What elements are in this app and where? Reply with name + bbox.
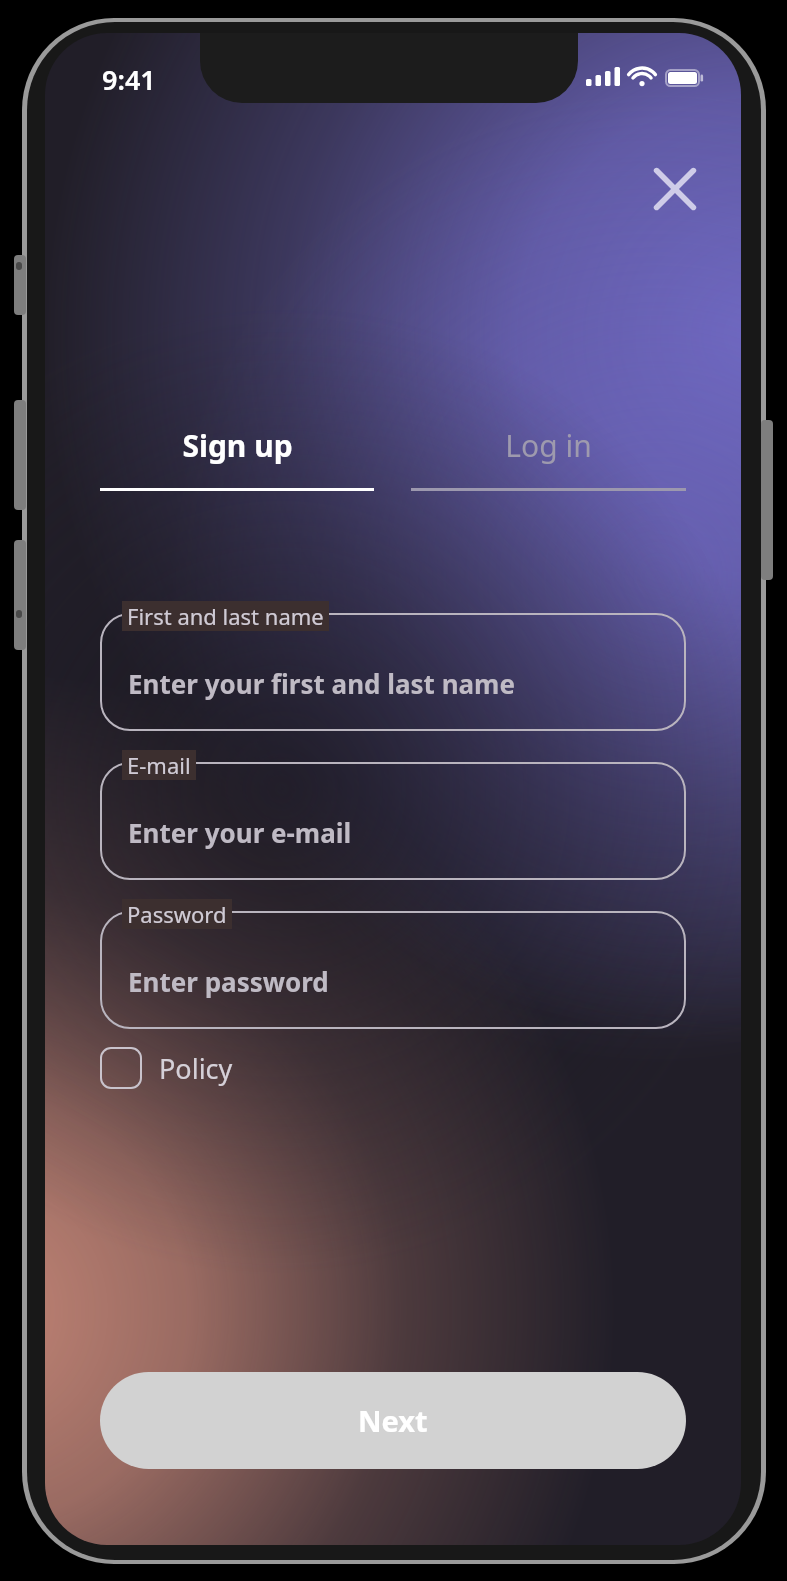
staticText: Policy (159, 1050, 233, 1087)
staticText: E-mail (127, 750, 191, 780)
button[interactable]: Next (100, 1372, 686, 1469)
button[interactable]: Log in (411, 425, 686, 491)
staticText: Log in (505, 425, 592, 466)
staticText: First and last name (127, 601, 324, 631)
staticText: Enter password (128, 964, 329, 999)
staticText: Enter your e-mail (128, 815, 352, 850)
button[interactable]: Close (631, 145, 719, 233)
staticText: 9:41 (102, 61, 156, 98)
staticText: Sign up (182, 425, 293, 466)
staticText: Password (127, 899, 227, 929)
button[interactable]: Sign up (100, 425, 374, 491)
staticText: Enter your first and last name (128, 666, 515, 701)
staticText: Next (358, 1401, 428, 1440)
button[interactable]: Policy (100, 1047, 233, 1089)
